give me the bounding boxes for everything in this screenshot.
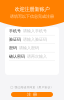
staticText: 验证码 [9,37,21,42]
staticText: 请再次输入 [27,54,47,59]
staticText: 请填写以下信息完成注册 [10,14,54,19]
staticText: 注 册 [27,92,37,97]
button[interactable]: 注 册 [11,92,53,97]
staticText: 欢迎注册新账户 [14,6,49,13]
staticText: 请输入密码 [19,45,39,50]
staticText: 密码 [9,45,17,50]
staticText: 我已阅读并同意《用户协议》 [14,86,53,89]
staticText: 请输入验证码 [23,37,47,42]
staticText: 手机号 [9,28,21,33]
staticText: 请输入手机号 [23,28,47,33]
staticText: 确认密码 [9,54,25,59]
